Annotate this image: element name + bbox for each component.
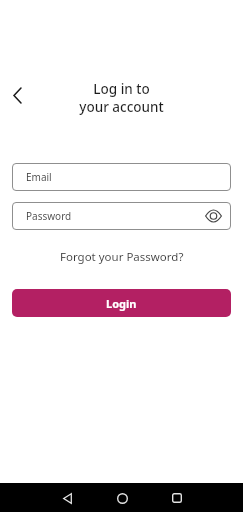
staticText: Log in to [93,80,150,98]
button[interactable] [5,83,29,107]
button[interactable]: Email [12,163,231,191]
staticText: your account [79,98,164,116]
button[interactable]: Password [12,202,231,230]
button[interactable]: Login [12,289,231,317]
button[interactable] [116,492,128,504]
staticText: Email [26,170,52,184]
button[interactable]: Forgot your Password? [60,249,184,265]
staticText: Password [26,209,72,223]
button[interactable] [171,492,183,504]
button[interactable] [61,492,73,504]
staticText: Login [106,296,137,311]
